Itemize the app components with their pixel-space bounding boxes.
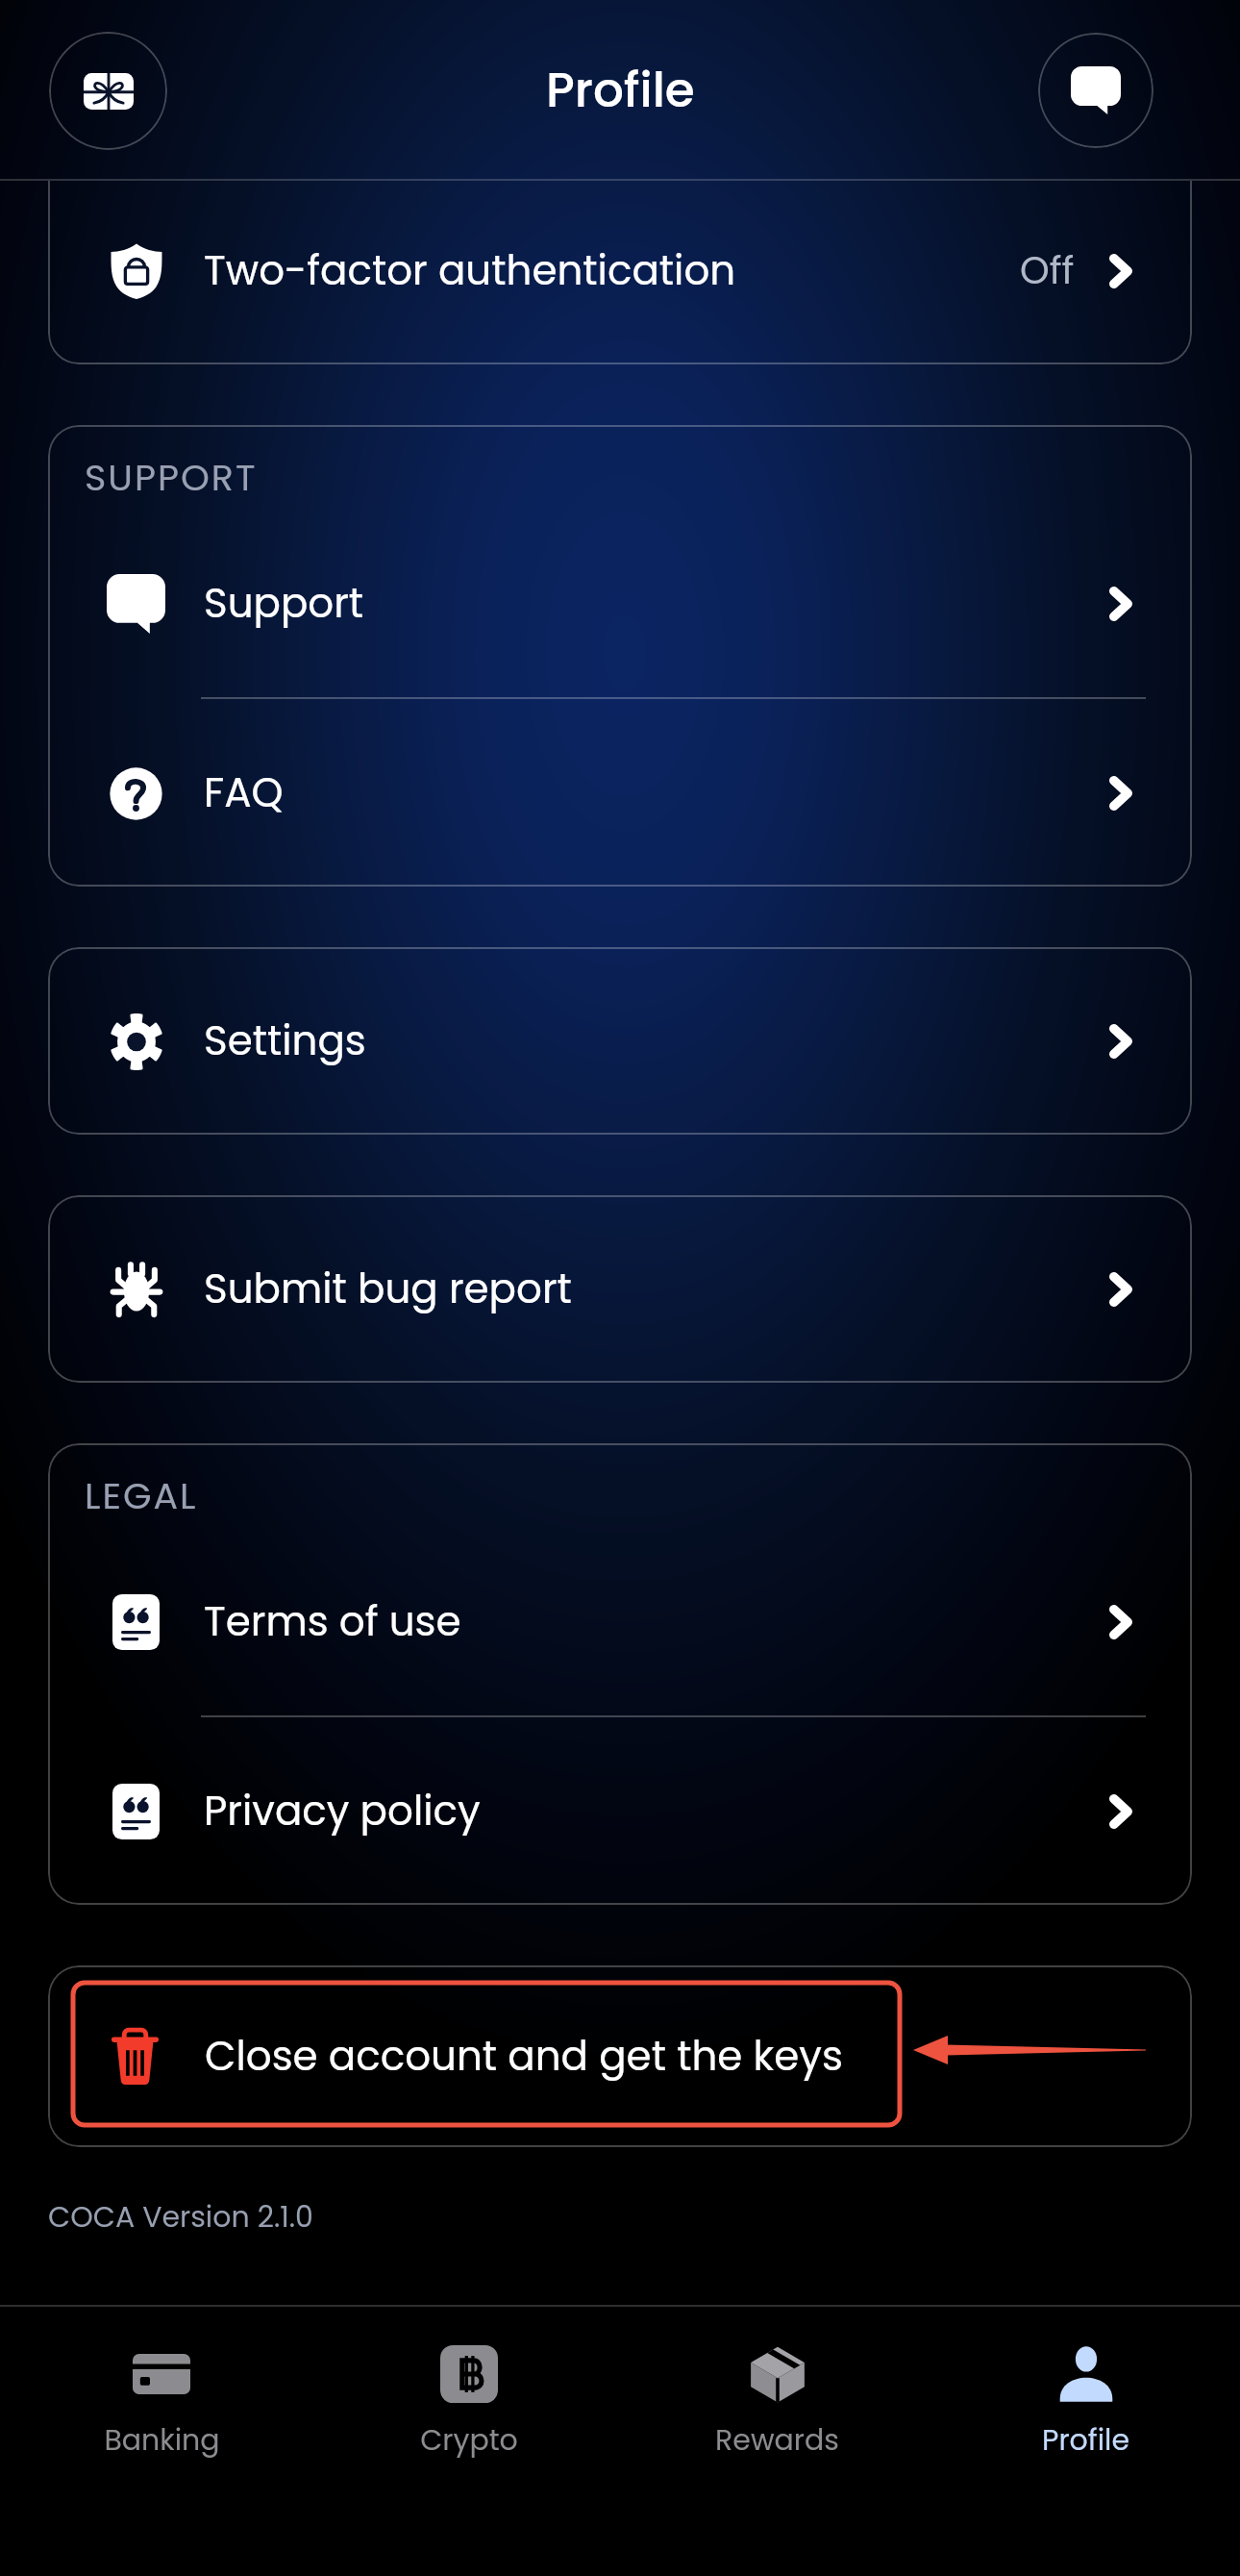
staticText: FAQ (204, 764, 284, 821)
staticText: Rewards (715, 2420, 839, 2461)
button[interactable]: Support (48, 510, 1192, 697)
staticText: Crypto (420, 2420, 518, 2461)
staticText: Banking (104, 2420, 220, 2461)
button[interactable]: Submit bug report (48, 1195, 1192, 1383)
button[interactable]: Settings (48, 947, 1192, 1135)
button[interactable]: Two-factor authentication (48, 181, 1192, 364)
button[interactable]: Close account and get the keys (48, 1965, 1192, 2147)
button[interactable]: Privacy policy (48, 1717, 1192, 1905)
staticText: SUPPORT (85, 452, 258, 503)
button[interactable]: FAQ (48, 699, 1192, 887)
staticText: Profile (1042, 2420, 1129, 2461)
staticText: Privacy policy (204, 1783, 481, 1839)
button[interactable]: Open chat (1038, 33, 1153, 148)
button[interactable]: Gift rewards (49, 32, 167, 150)
button[interactable]: Terms of use (48, 1528, 1192, 1715)
staticText: Submit bug report (204, 1261, 572, 1317)
staticText: Profile (546, 57, 695, 124)
staticText: Off (1020, 244, 1075, 297)
staticText: Two-factor authentication (204, 242, 736, 299)
button[interactable]: Rewards (623, 2307, 931, 2461)
staticText: Support (204, 575, 364, 632)
staticText: Terms of use (204, 1593, 461, 1650)
staticText: LEGAL (85, 1470, 198, 1521)
staticText: Close account and get the keys (205, 2028, 843, 2085)
button[interactable]: Crypto (315, 2307, 623, 2461)
button[interactable]: Banking (8, 2307, 315, 2461)
staticText: Settings (204, 1013, 366, 1069)
button[interactable]: Profile (931, 2307, 1240, 2461)
staticText: COCA Version 2.1.0 (48, 2197, 313, 2238)
